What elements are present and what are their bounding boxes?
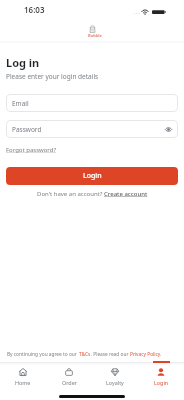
button[interactable]: T&Cs. (79, 351, 92, 358)
staticText: Please enter your login details (6, 72, 99, 81)
staticText: By continuing you agree to our (7, 351, 79, 358)
staticText: Email (12, 99, 29, 108)
other: Loyalty (111, 368, 119, 376)
button[interactable]: Order (46, 362, 92, 388)
button[interactable]: Create account (104, 190, 148, 198)
button[interactable]: Forgot password? (6, 146, 57, 154)
staticText: 16:03 (24, 4, 45, 15)
staticText: Home (15, 379, 31, 386)
button[interactable]: Login (6, 167, 178, 185)
other: Order (65, 368, 73, 376)
staticText: Don't have an account? (37, 190, 104, 198)
button[interactable]: Loyalty (92, 362, 138, 388)
staticText: Please read our (92, 351, 130, 358)
other: Login (157, 368, 165, 376)
staticText: Password (12, 125, 42, 134)
button[interactable]: Privacy Policy. (130, 351, 162, 358)
button[interactable]: Login (138, 362, 184, 388)
other: Home (19, 368, 27, 376)
staticText: Log in (6, 55, 40, 70)
staticText: Loyalty (106, 379, 124, 386)
button[interactable]: Password (6, 120, 178, 138)
other: Show password (165, 127, 172, 132)
staticText: Bubble (88, 33, 102, 38)
staticText: Login (83, 171, 102, 181)
button[interactable]: Home (0, 362, 46, 388)
staticText: Login (154, 379, 169, 386)
staticText: Order (62, 379, 77, 386)
button[interactable]: Email (6, 94, 178, 112)
